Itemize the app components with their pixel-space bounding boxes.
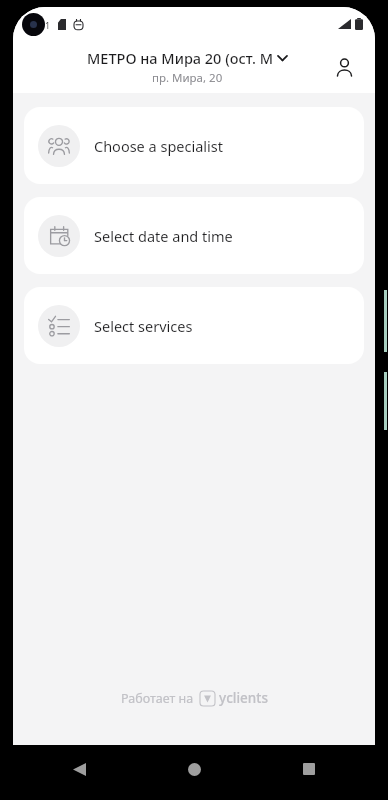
staticText: Select date and time <box>94 226 233 246</box>
button[interactable]: Recents <box>291 751 327 787</box>
button[interactable]: Back <box>61 751 97 787</box>
button[interactable]: Select date and time <box>24 197 364 274</box>
button[interactable]: Работает на <box>13 683 375 713</box>
staticText: Choose a specialist <box>94 136 224 156</box>
staticText: 1 <box>45 19 51 31</box>
button[interactable]: Profile <box>327 50 361 84</box>
staticText: yclients <box>219 689 268 707</box>
staticText: пр. Мира, 20 <box>152 70 223 86</box>
staticText: Select services <box>94 316 193 336</box>
button[interactable]: Select services <box>24 287 364 364</box>
staticText: Работает на <box>121 690 194 707</box>
staticText: МЕТРО на Мира 20 (ост. М <box>87 48 274 68</box>
button[interactable]: Choose a specialist <box>24 107 364 184</box>
button[interactable]: Home <box>176 751 212 787</box>
